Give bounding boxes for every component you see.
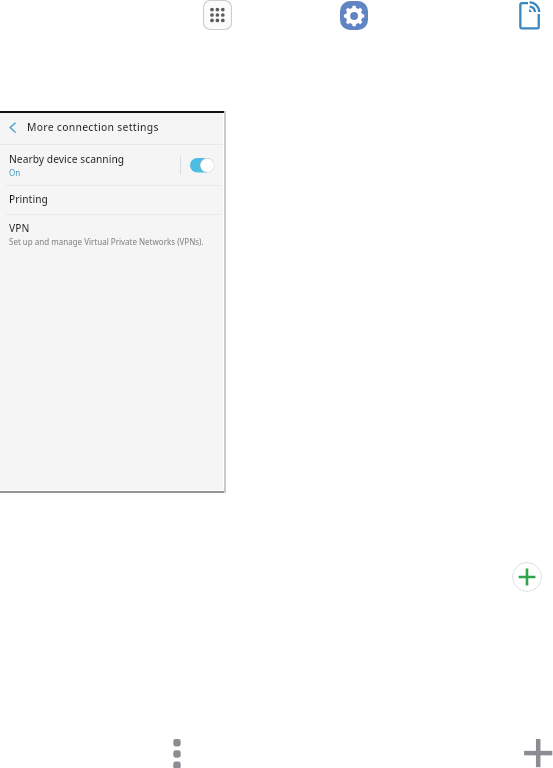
staticText: Set up and manage Virtual Private Networ… [9,236,204,247]
staticText: Nearby device scanning [9,152,125,166]
button[interactable]: NFC [518,0,542,31]
button[interactable]: More connection settings [0,111,223,144]
button[interactable]: VPN [0,215,223,251]
staticText: VPN [9,221,30,235]
staticText: On [9,167,21,178]
button[interactable]: Settings [340,1,368,30]
button[interactable]: Add [512,562,542,592]
button[interactable]: Nearby device scanning [0,144,223,185]
button[interactable]: Apps [203,0,232,30]
staticText: Printing [9,192,48,206]
button[interactable]: More options [169,734,185,768]
button[interactable]: Nearby device scanning toggle [188,154,216,176]
staticText: More connection settings [27,120,159,134]
button[interactable]: Printing [0,186,223,214]
button[interactable]: Add [521,734,553,768]
